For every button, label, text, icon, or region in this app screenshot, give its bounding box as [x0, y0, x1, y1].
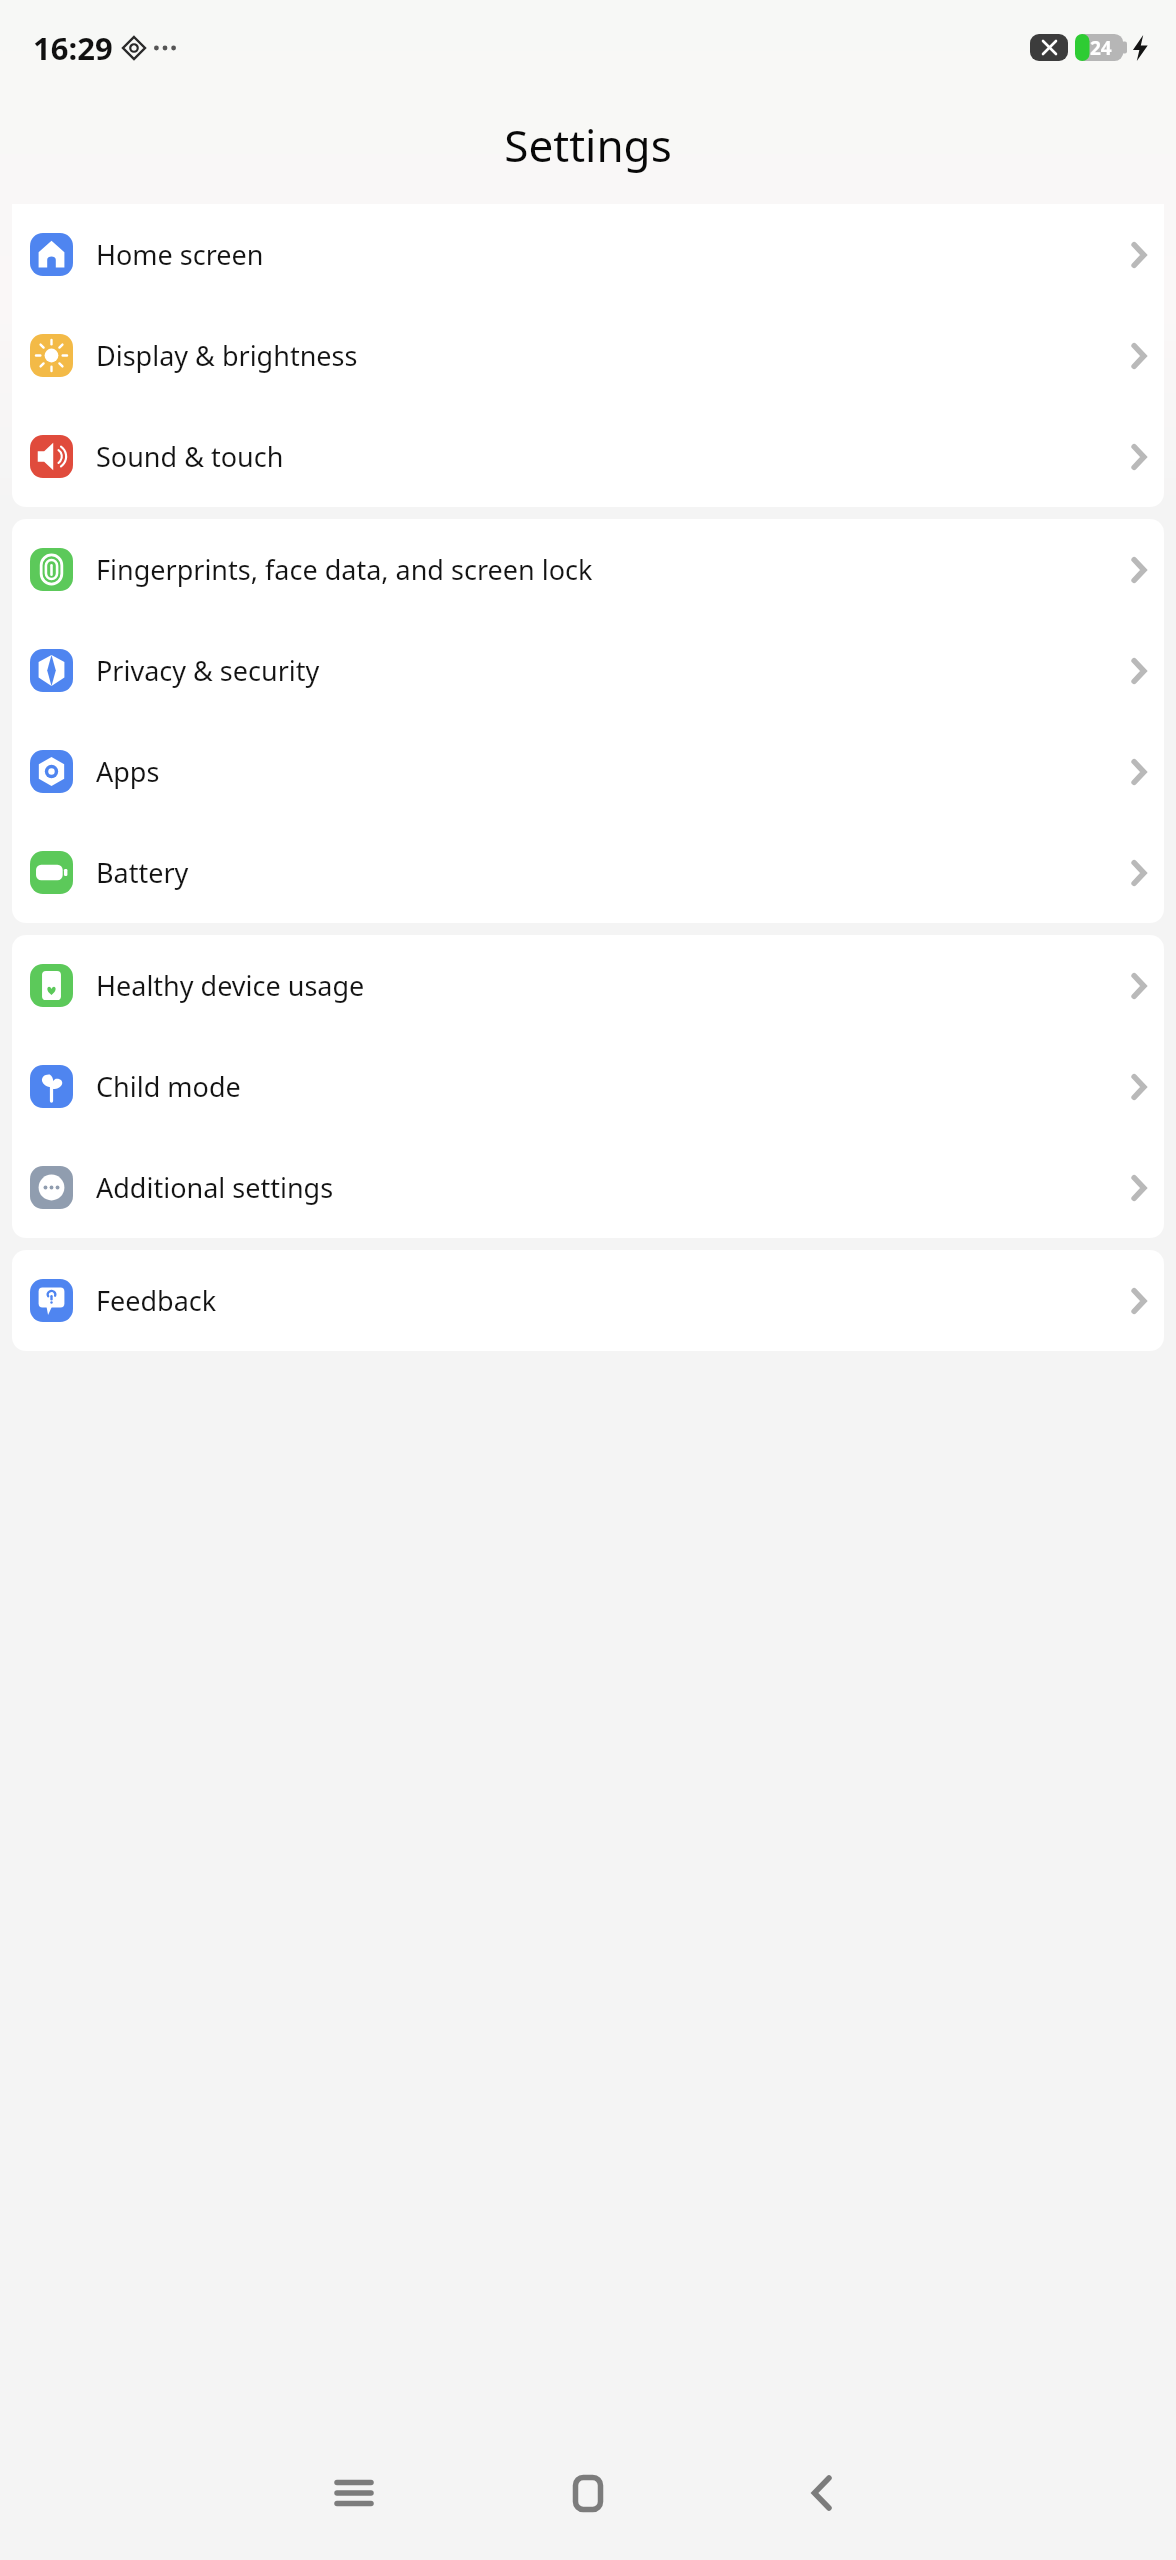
staticText: 24: [1090, 35, 1112, 61]
staticText: Battery: [96, 854, 1118, 891]
staticText: Fingerprints, face data, and screen lock: [96, 551, 1118, 588]
button[interactable]: Battery: [12, 822, 1164, 923]
staticText: Healthy device usage: [96, 967, 1118, 1004]
button[interactable]: Fingerprints, face data, and screen lock: [12, 519, 1164, 620]
staticText: Apps: [96, 753, 1118, 790]
staticText: Sound & touch: [96, 438, 1118, 475]
staticText: Settings: [504, 115, 672, 175]
staticText: Display & brightness: [96, 337, 1118, 374]
staticText: Additional settings: [96, 1169, 1118, 1206]
button[interactable]: Sound & touch: [12, 406, 1164, 507]
staticText: Feedback: [96, 1282, 1118, 1319]
button[interactable]: Additional settings: [12, 1137, 1164, 1238]
button[interactable]: Recent apps: [315, 2454, 393, 2532]
staticText: Child mode: [96, 1068, 1118, 1105]
button[interactable]: Privacy & security: [12, 620, 1164, 721]
staticText: 16:29: [33, 27, 113, 69]
button[interactable]: Display & brightness: [12, 305, 1164, 406]
button[interactable]: Home: [549, 2454, 627, 2532]
staticText: Privacy & security: [96, 652, 1118, 689]
button[interactable]: Home screen: [12, 204, 1164, 305]
button[interactable]: Feedback: [12, 1250, 1164, 1351]
button[interactable]: Apps: [12, 721, 1164, 822]
button[interactable]: Healthy device usage: [12, 935, 1164, 1036]
staticText: Home screen: [96, 236, 1118, 273]
button[interactable]: Child mode: [12, 1036, 1164, 1137]
button[interactable]: Back: [783, 2454, 861, 2532]
